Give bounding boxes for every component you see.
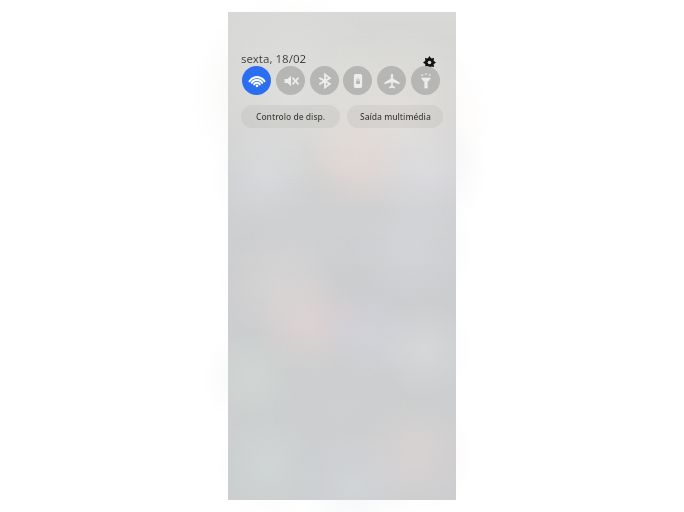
button[interactable]: Som desligado — [276, 66, 305, 95]
button[interactable]: Wi-Fi — [242, 66, 271, 95]
staticText: Controlo de disp. — [256, 111, 326, 123]
button[interactable]: Bluetooth — [310, 66, 339, 95]
button[interactable]: Modo de voo — [377, 66, 406, 95]
button[interactable]: Saída multimédia — [347, 105, 443, 128]
staticText: sexta, 18/02 — [241, 51, 307, 67]
button[interactable]: Lanterna — [411, 66, 440, 95]
button[interactable]: Controlo de disp. — [241, 105, 340, 128]
button[interactable]: Bloqueio de rotação — [343, 66, 372, 95]
button[interactable]: Definições — [417, 50, 441, 74]
staticText: Saída multimédia — [360, 111, 431, 123]
